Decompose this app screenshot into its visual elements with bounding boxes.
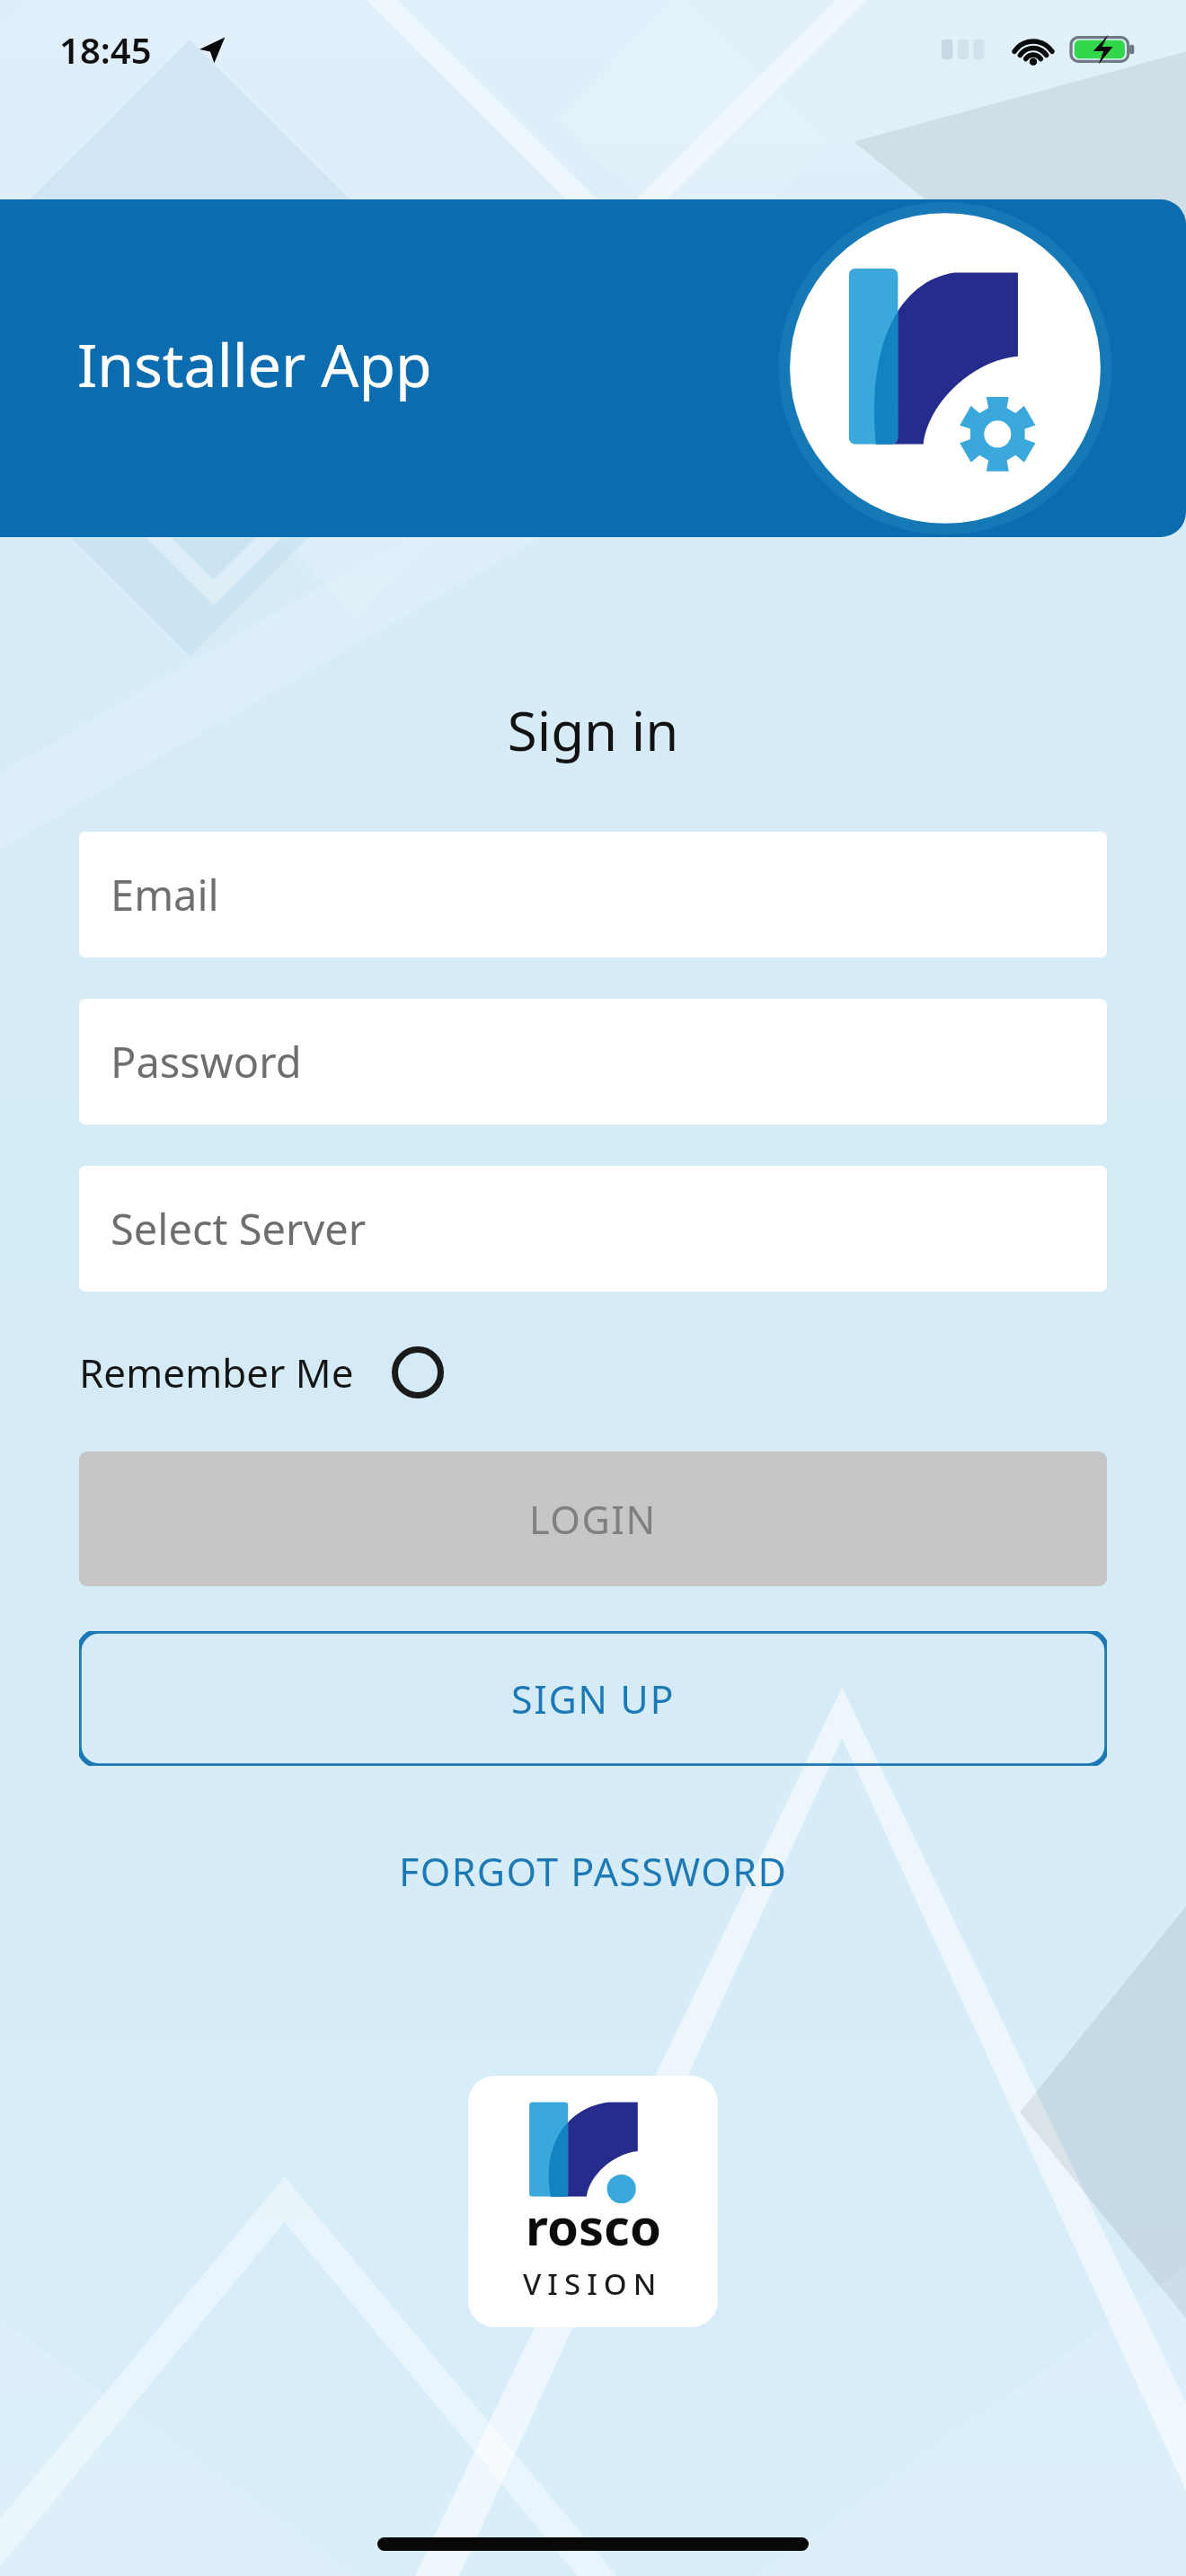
staticText: 18:45 — [59, 25, 152, 74]
button[interactable]: Password — [79, 999, 1107, 1125]
button[interactable]: FORGOT PASSWORD — [377, 1836, 810, 1907]
staticText: Select Server — [111, 1200, 367, 1257]
staticText: VISION — [523, 2263, 663, 2304]
other: Rosco Vision — [468, 2076, 718, 2327]
staticText: FORGOT PASSWORD — [399, 1845, 788, 1898]
staticText: Remember Me — [79, 1345, 354, 1399]
staticText: Sign in — [0, 693, 1186, 767]
button[interactable]: Select Server — [79, 1166, 1107, 1292]
staticText: Installer App — [77, 323, 432, 404]
button[interactable]: SIGN UP — [79, 1631, 1107, 1766]
staticText: Password — [111, 1033, 302, 1090]
staticText: Email — [111, 866, 219, 923]
staticText: SIGN UP — [511, 1672, 675, 1725]
staticText: LOGIN — [529, 1493, 657, 1546]
staticText: rosco — [526, 2192, 661, 2260]
button[interactable]: LOGIN — [79, 1451, 1107, 1586]
other: Installer App logo — [776, 199, 1114, 537]
button[interactable]: Remember Me — [79, 1333, 444, 1412]
button[interactable]: Email — [79, 832, 1107, 957]
